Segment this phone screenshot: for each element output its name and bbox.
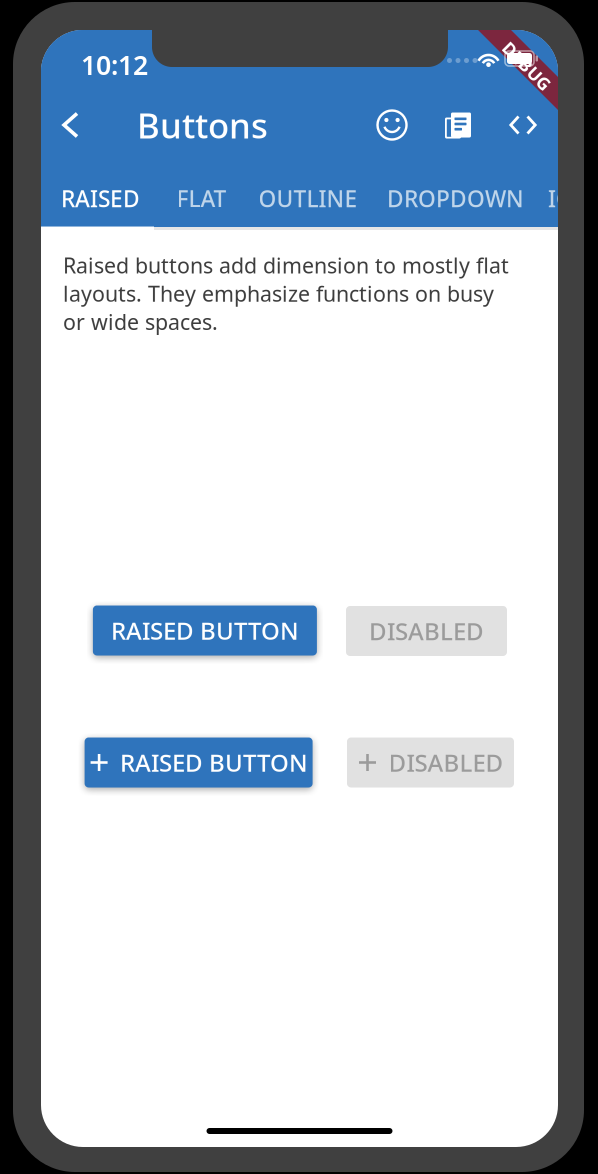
staticText: DEBUG	[496, 54, 557, 77]
button[interactable]: Buttons	[137, 102, 297, 148]
staticText: FLAT	[176, 183, 226, 213]
staticText: RAISED	[61, 183, 140, 213]
button[interactable]: OUTLINE	[243, 170, 373, 227]
staticText: ICON	[548, 183, 598, 213]
button[interactable]: RAISED	[41, 170, 160, 227]
button[interactable]: Mood	[367, 100, 417, 150]
staticText: RAISED BUTTON	[111, 615, 299, 646]
button[interactable]: Back	[46, 100, 96, 150]
button[interactable]: ICON	[538, 170, 598, 227]
staticText: RAISED BUTTON	[120, 747, 308, 778]
staticText: Buttons	[137, 102, 268, 148]
button[interactable]: RAISED BUTTON	[93, 605, 317, 655]
button[interactable]: DISABLED	[346, 606, 507, 656]
staticText: Raised buttons add dimension to mostly f…	[63, 251, 509, 336]
staticText: DISABLED	[388, 747, 503, 778]
button[interactable]: DISABLED	[347, 737, 514, 787]
button[interactable]: DROPDOWN	[373, 170, 538, 227]
staticText: OUTLINE	[258, 183, 357, 213]
staticText: DISABLED	[369, 615, 484, 647]
staticText: 10:12	[81, 47, 148, 82]
button[interactable]: View source code	[498, 100, 548, 150]
button[interactable]: Documentation	[433, 100, 483, 150]
staticText: DROPDOWN	[387, 183, 524, 213]
button[interactable]: RAISED BUTTON	[85, 737, 313, 787]
button[interactable]: FLAT	[160, 170, 243, 227]
